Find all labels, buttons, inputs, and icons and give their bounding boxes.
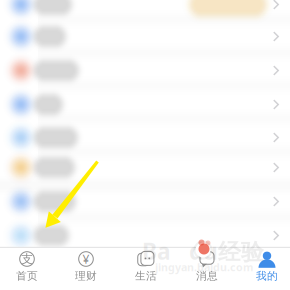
button[interactable]: 生活 bbox=[117, 247, 175, 290]
staticText: 消息 bbox=[196, 269, 218, 282]
button[interactable]: 消息 bbox=[178, 247, 236, 290]
button[interactable] bbox=[0, 185, 290, 218]
button[interactable] bbox=[0, 0, 290, 21]
staticText: Ba du经验 bbox=[142, 236, 264, 266]
staticText: 生活 bbox=[135, 269, 157, 282]
button[interactable] bbox=[0, 151, 290, 184]
staticText: 理财 bbox=[75, 269, 97, 282]
staticText: jingyan.baidu.com bbox=[155, 260, 253, 274]
button[interactable] bbox=[0, 88, 290, 121]
button[interactable] bbox=[0, 121, 290, 154]
staticText: 我的 bbox=[256, 269, 278, 282]
button[interactable]: 支 bbox=[0, 247, 56, 290]
button[interactable] bbox=[0, 54, 290, 87]
button[interactable]: ¥ bbox=[57, 247, 115, 290]
button[interactable] bbox=[0, 20, 290, 53]
staticText: ¥ bbox=[82, 251, 89, 267]
button[interactable] bbox=[0, 219, 290, 252]
button[interactable]: 我的 bbox=[238, 247, 290, 290]
staticText: 支 bbox=[21, 252, 33, 266]
staticText: 首页 bbox=[16, 269, 38, 282]
